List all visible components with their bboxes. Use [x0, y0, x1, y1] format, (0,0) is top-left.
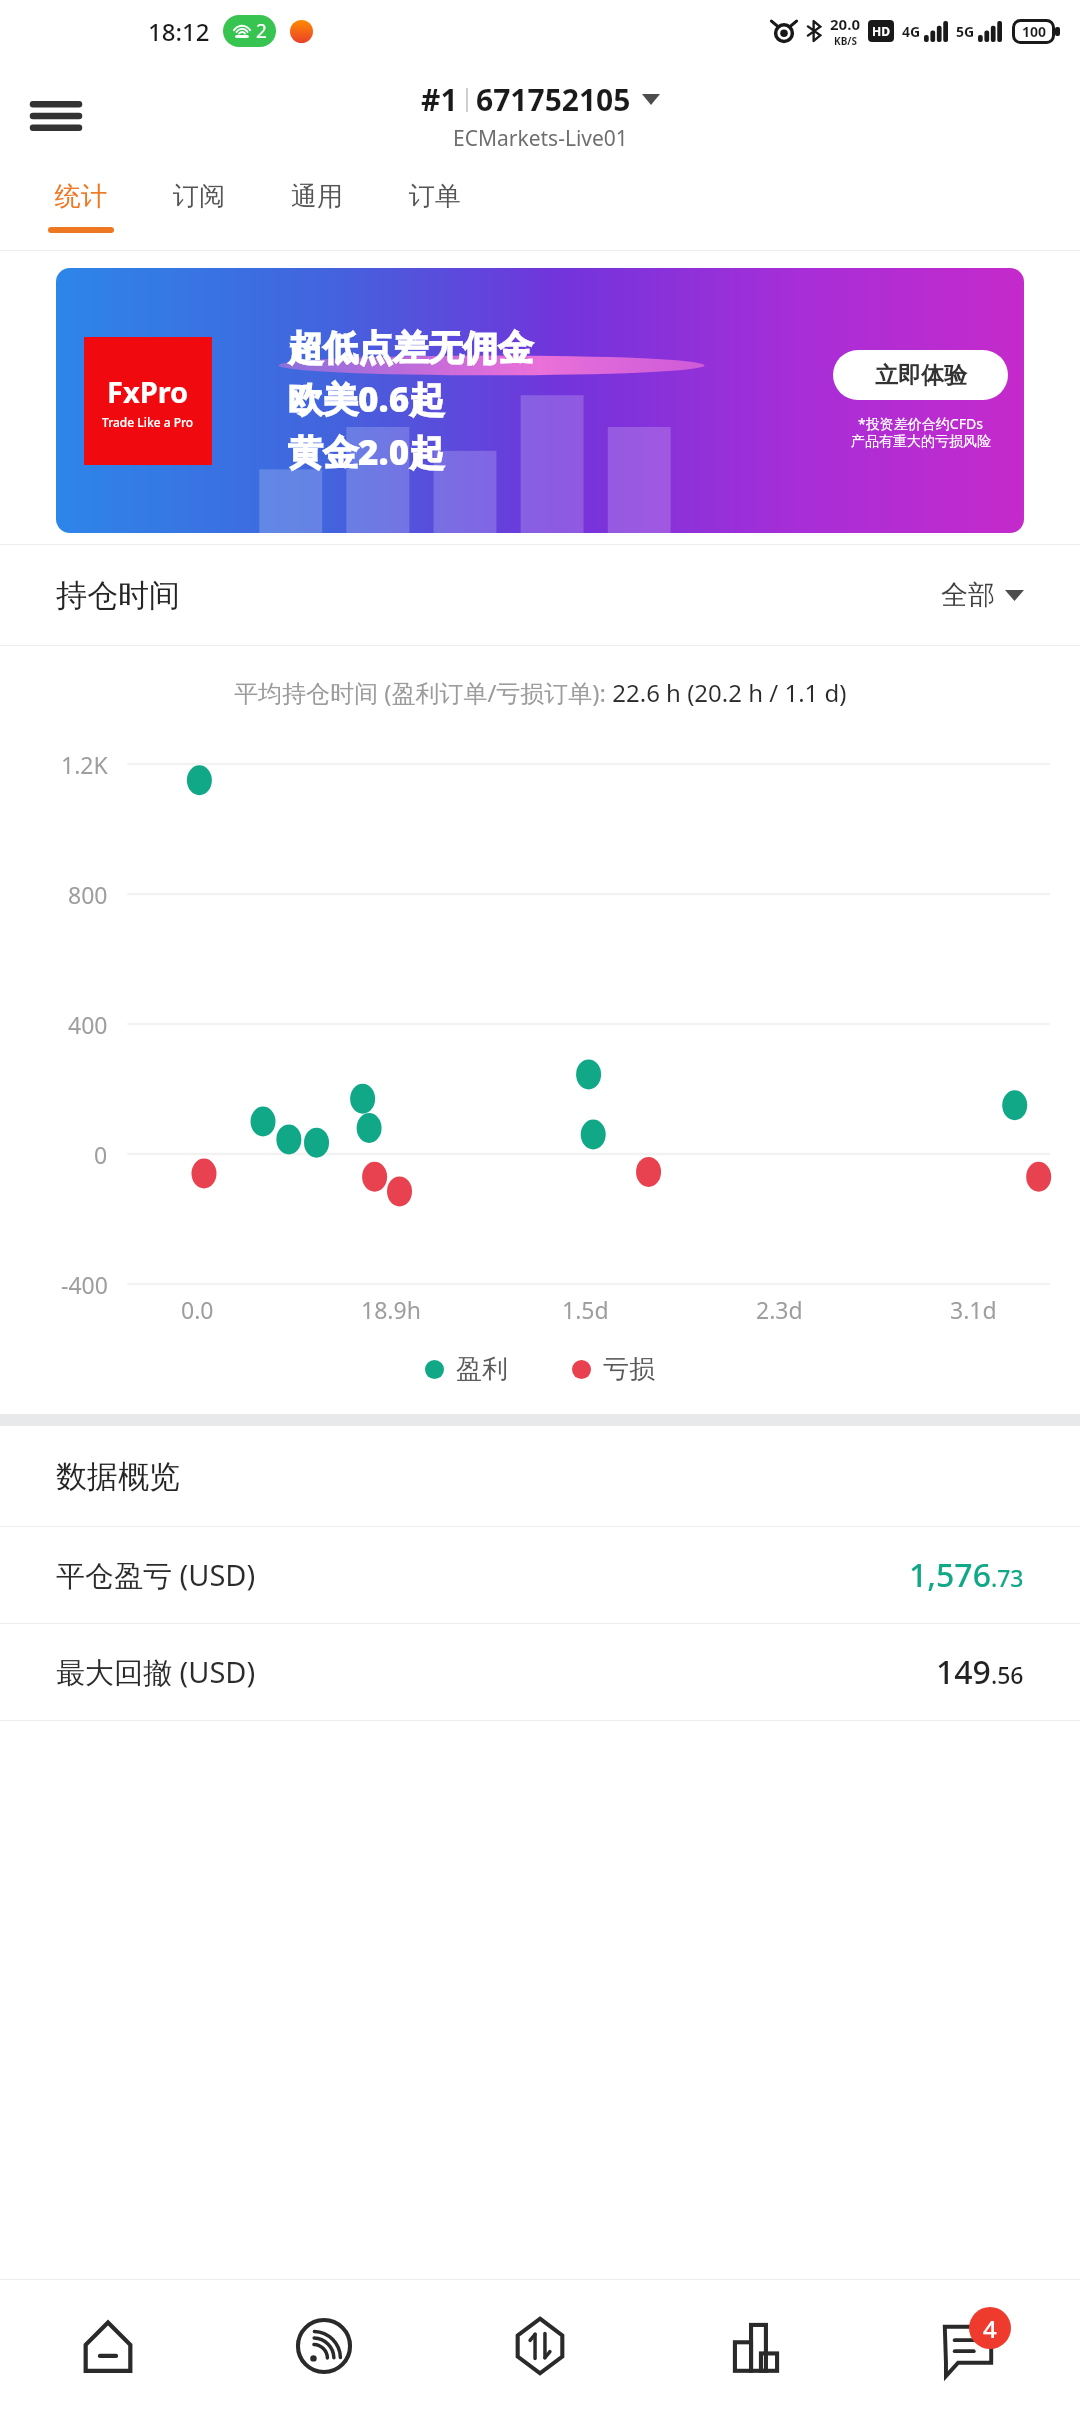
staticText: 1.5d	[562, 1294, 609, 1325]
staticText: ECMarkets-Live01	[453, 124, 628, 153]
staticText: 3.1d	[950, 1294, 997, 1325]
staticText: 订阅	[173, 180, 225, 213]
button[interactable]: 立即体验	[833, 350, 1008, 400]
staticText: 通用	[291, 180, 343, 213]
button[interactable]: Signals	[216, 2280, 432, 2412]
staticText: 20.0	[830, 14, 860, 34]
staticText: 2	[256, 18, 267, 44]
button[interactable]: #1	[421, 79, 660, 153]
button[interactable]: 盈利	[425, 1353, 508, 1386]
staticText: 亏损	[603, 1353, 655, 1386]
staticText: HD	[872, 23, 890, 39]
staticText: #1	[421, 79, 458, 120]
staticText: 欧美0.6起	[288, 375, 445, 423]
staticText: 产品有重大的亏损风险	[851, 433, 991, 451]
staticText: FxPro	[107, 372, 189, 411]
staticText: 2.3d	[756, 1294, 803, 1325]
staticText: 1.2K	[61, 749, 108, 780]
staticText: 统计	[55, 180, 107, 213]
staticText: 全部	[941, 578, 995, 612]
staticText: 4G	[902, 22, 921, 41]
staticText: 4	[983, 2312, 997, 2345]
staticText: 盈利	[456, 1353, 508, 1386]
staticText: 平仓盈亏 (USD)	[56, 1555, 256, 1595]
button[interactable]: 平仓盈亏 (USD)	[56, 1527, 1024, 1623]
staticText: 0	[94, 1139, 108, 1170]
staticText: 持仓时间	[56, 576, 180, 615]
staticText: 5G	[956, 22, 975, 41]
staticText: 18:12	[148, 15, 210, 48]
button[interactable]: 统计	[22, 170, 140, 250]
button[interactable]: 亏损	[572, 1353, 655, 1386]
button[interactable]: 最大回撤 (USD)	[56, 1624, 1024, 1720]
button[interactable]: Menu	[18, 78, 94, 154]
button[interactable]: Statistics	[648, 2280, 864, 2412]
staticText: 黄金2.0起	[288, 428, 445, 476]
staticText: 超低点差无佣金	[288, 326, 533, 370]
staticText: 最大回撤 (USD)	[56, 1652, 256, 1692]
staticText: *投资差价合约CFDs	[858, 414, 983, 433]
staticText: 18.9h	[361, 1294, 421, 1325]
staticText: -400	[61, 1269, 108, 1300]
staticText: 400	[68, 1009, 108, 1040]
staticText: 149.56	[936, 1650, 1024, 1694]
staticText: 800	[68, 879, 108, 910]
button[interactable]: Home	[0, 2280, 216, 2412]
staticText: 数据概览	[56, 1457, 180, 1496]
staticText: 平均持仓时间 (盈利订单/亏损订单): 22.6 h (20.2 h / 1.1…	[234, 676, 847, 709]
staticText: 671752105	[476, 79, 631, 120]
button[interactable]: FxPro	[56, 268, 1024, 533]
staticText: 100	[1022, 22, 1047, 41]
staticText: 订单	[409, 180, 461, 213]
staticText: 0.0	[181, 1294, 214, 1325]
staticText: Trade Like a Pro	[102, 414, 194, 430]
button[interactable]: 通用	[258, 170, 376, 250]
button[interactable]: Messages	[864, 2280, 1080, 2412]
staticText: 立即体验	[875, 361, 967, 390]
button[interactable]: 订阅	[140, 170, 258, 250]
staticText: 1,576.73	[909, 1553, 1024, 1597]
button[interactable]: 订单	[376, 170, 494, 250]
button[interactable]: Trade	[432, 2280, 648, 2412]
staticText: KB/S	[834, 34, 857, 48]
button[interactable]: 全部	[941, 578, 1024, 612]
